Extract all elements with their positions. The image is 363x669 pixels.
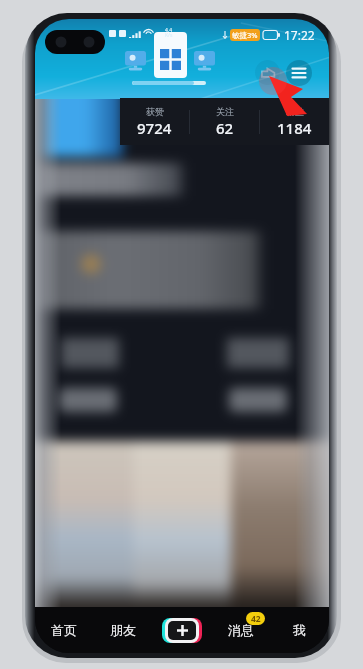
staticText: 62 — [216, 118, 234, 138]
staticText: 17:22 — [284, 27, 315, 43]
staticText: 消息 — [228, 622, 254, 638]
staticText: 朋友 — [110, 622, 136, 638]
button[interactable]: 获赞 — [120, 98, 189, 145]
staticText: 获赞 — [146, 106, 164, 117]
staticText: 9724 — [137, 118, 172, 138]
staticText: 首页 — [51, 622, 77, 638]
staticText: 我 — [293, 622, 306, 638]
staticText: 敏捷3% — [232, 30, 258, 40]
button[interactable]: 我 — [270, 607, 329, 653]
button[interactable]: 消息 — [211, 607, 270, 653]
button[interactable]: 粉丝 — [260, 98, 329, 145]
staticText: 关注 — [216, 106, 234, 117]
button[interactable]: 首页 — [35, 607, 93, 653]
button[interactable]: Pointer — [255, 60, 280, 85]
button[interactable]: 关注 — [190, 98, 259, 145]
button[interactable]: Create — [163, 617, 201, 643]
button[interactable]: 朋友 — [93, 607, 152, 653]
button[interactable]: Menu — [286, 60, 312, 86]
staticText: 1184 — [277, 118, 312, 138]
button[interactable] — [229, 388, 287, 412]
staticText: 4.4 K/s — [165, 27, 173, 39]
staticText: 粉丝 — [286, 106, 304, 117]
staticText: 42 — [251, 613, 261, 625]
button[interactable] — [59, 388, 117, 412]
